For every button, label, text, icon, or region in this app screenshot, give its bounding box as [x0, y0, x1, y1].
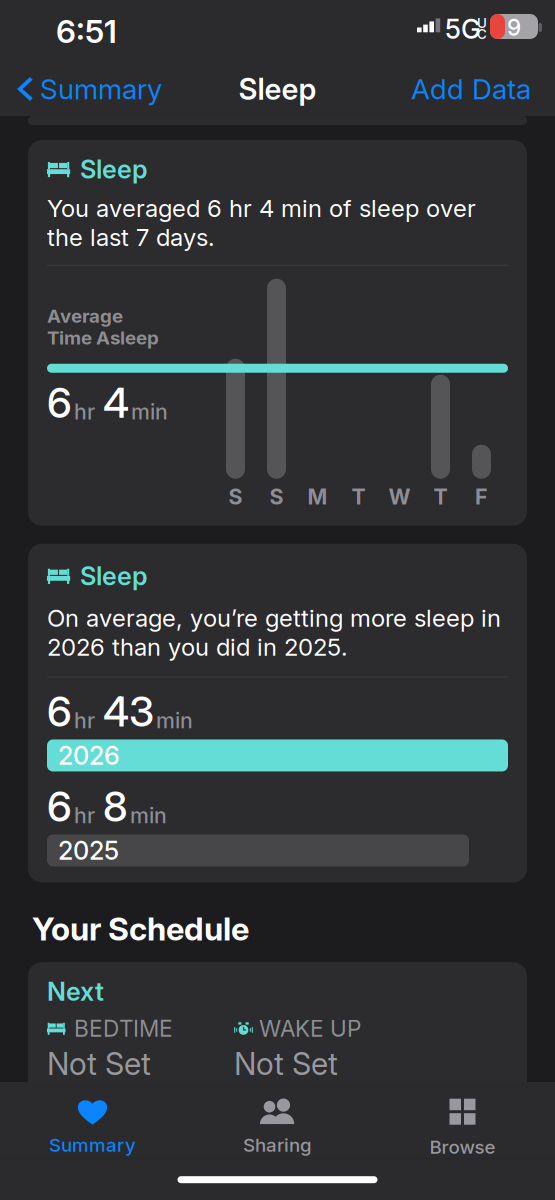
staticText: 6 [47, 378, 72, 428]
staticText: Time Asleep [47, 326, 159, 349]
staticText: Summary [40, 72, 162, 106]
staticText: U [477, 15, 487, 31]
button[interactable]: Add Data [401, 62, 555, 116]
staticText: Sleep [80, 561, 148, 591]
staticText: min [130, 803, 167, 828]
staticText: 8 [103, 781, 128, 831]
staticText: BEDTIME [74, 1015, 173, 1042]
staticText: 9 [507, 14, 521, 41]
staticText: Sharing [243, 1134, 312, 1156]
staticText: T [351, 484, 365, 510]
staticText: min [156, 708, 193, 733]
staticText: F [475, 484, 488, 510]
staticText: Add Data [411, 72, 531, 106]
staticText: hr [74, 803, 95, 828]
button[interactable]: Summary [0, 62, 172, 116]
staticText: C [477, 26, 487, 42]
button[interactable]: Summary [0, 1083, 185, 1159]
staticText: 5G [445, 13, 481, 45]
staticText: Next [47, 976, 104, 1007]
staticText: WAKE UP [259, 1015, 361, 1042]
staticText: Sleep [80, 154, 148, 185]
staticText: min [131, 399, 168, 425]
staticText: hr [74, 708, 95, 733]
staticText: W [388, 484, 410, 510]
staticText: 6:51 [56, 12, 117, 51]
staticText: 2026 [58, 740, 120, 771]
staticText: hr [74, 399, 95, 425]
staticText: Not Set [47, 1045, 151, 1082]
staticText: Average [47, 305, 123, 327]
staticText: 6 [47, 686, 72, 736]
staticText: 6 [47, 781, 72, 831]
staticText: On average, you’re getting more sleep in… [47, 603, 501, 661]
staticText: Summary [49, 1134, 136, 1156]
staticText: Your Schedule [32, 909, 249, 948]
staticText: 43 [103, 686, 154, 736]
button[interactable]: Browse [370, 1083, 555, 1159]
staticText: Browse [429, 1136, 495, 1158]
button[interactable]: Sharing [185, 1083, 370, 1159]
staticText: S [269, 484, 283, 510]
staticText: You averaged 6 hr 4 min of sleep over th… [47, 194, 476, 252]
staticText: M [307, 484, 327, 510]
staticText: Sleep [238, 71, 316, 107]
staticText: 4 [103, 378, 129, 428]
staticText: 2025 [58, 835, 119, 866]
staticText: T [433, 484, 447, 510]
staticText: Not Set [234, 1045, 338, 1082]
staticText: S [228, 484, 242, 510]
